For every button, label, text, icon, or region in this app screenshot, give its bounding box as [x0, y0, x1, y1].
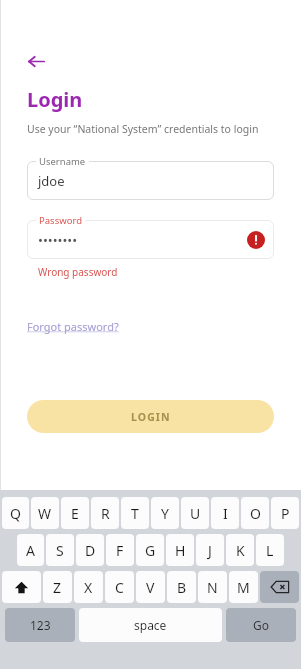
button[interactable]: I: [211, 497, 239, 529]
staticText: G: [145, 541, 156, 560]
button[interactable]: M: [229, 571, 258, 603]
staticText: ••••••••: [38, 231, 78, 249]
staticText: U: [190, 504, 201, 523]
staticText: Q: [10, 504, 21, 523]
button[interactable]: N: [198, 571, 227, 603]
button[interactable]: U: [181, 497, 209, 529]
other: Error: [247, 231, 265, 249]
button[interactable]: Q: [2, 497, 29, 529]
staticText: C: [115, 578, 124, 597]
button[interactable]: L: [256, 534, 284, 566]
staticText: W: [38, 504, 52, 523]
button[interactable]: J: [196, 534, 224, 566]
staticText: H: [175, 541, 186, 560]
staticText: Go: [253, 617, 269, 633]
button[interactable]: V: [136, 571, 165, 603]
button[interactable]: Go: [226, 608, 296, 642]
button[interactable]: K: [226, 534, 254, 566]
button[interactable]: LOGIN: [27, 400, 274, 433]
button[interactable]: Forgot password?: [27, 319, 119, 334]
button[interactable]: P: [271, 497, 299, 529]
button[interactable]: E: [61, 497, 89, 529]
staticText: J: [208, 541, 212, 560]
staticText: Y: [161, 504, 169, 523]
staticText: O: [250, 504, 261, 523]
button[interactable]: T: [121, 497, 149, 529]
staticText: X: [84, 578, 93, 597]
staticText: S: [56, 541, 64, 560]
button[interactable]: W: [31, 497, 59, 529]
button[interactable]: 123: [5, 608, 75, 642]
staticText: K: [236, 541, 245, 560]
staticText: R: [101, 504, 110, 523]
button[interactable]: X: [74, 571, 103, 603]
staticText: I: [223, 504, 228, 523]
button[interactable]: H: [166, 534, 194, 566]
staticText: Forgot password?: [27, 319, 119, 334]
button[interactable]: Y: [151, 497, 179, 529]
button[interactable]: B: [167, 571, 196, 603]
staticText: L: [266, 541, 274, 560]
button[interactable]: Backspace: [260, 571, 299, 603]
staticText: M: [237, 578, 250, 597]
button[interactable]: D: [76, 534, 104, 566]
button[interactable]: space: [79, 608, 222, 642]
staticText: Z: [53, 578, 62, 597]
button[interactable]: R: [91, 497, 119, 529]
staticText: Username: [39, 155, 86, 168]
staticText: Login: [27, 86, 83, 113]
staticText: V: [146, 578, 155, 597]
button[interactable]: A: [17, 534, 44, 566]
button[interactable]: C: [105, 571, 134, 603]
staticText: P: [281, 504, 290, 523]
staticText: D: [85, 541, 96, 560]
staticText: Wrong password: [38, 265, 118, 279]
button[interactable]: G: [136, 534, 164, 566]
staticText: E: [71, 504, 79, 523]
staticText: B: [177, 578, 187, 597]
button[interactable]: F: [106, 534, 134, 566]
staticText: space: [134, 617, 167, 633]
staticText: Password: [39, 214, 82, 227]
button[interactable]: Z: [43, 571, 72, 603]
button[interactable]: jdoe: [27, 161, 274, 200]
staticText: 123: [30, 617, 51, 633]
staticText: N: [207, 578, 218, 597]
staticText: jdoe: [38, 172, 65, 190]
button[interactable]: Back: [21, 46, 51, 76]
staticText: Use your “National System” credentials t…: [27, 122, 259, 136]
button[interactable]: Shift: [2, 571, 41, 603]
staticText: LOGIN: [131, 410, 171, 424]
staticText: F: [116, 541, 124, 560]
button[interactable]: O: [241, 497, 269, 529]
button[interactable]: ••••••••: [27, 220, 274, 259]
staticText: T: [131, 504, 139, 523]
staticText: A: [26, 541, 35, 560]
button[interactable]: S: [46, 534, 74, 566]
